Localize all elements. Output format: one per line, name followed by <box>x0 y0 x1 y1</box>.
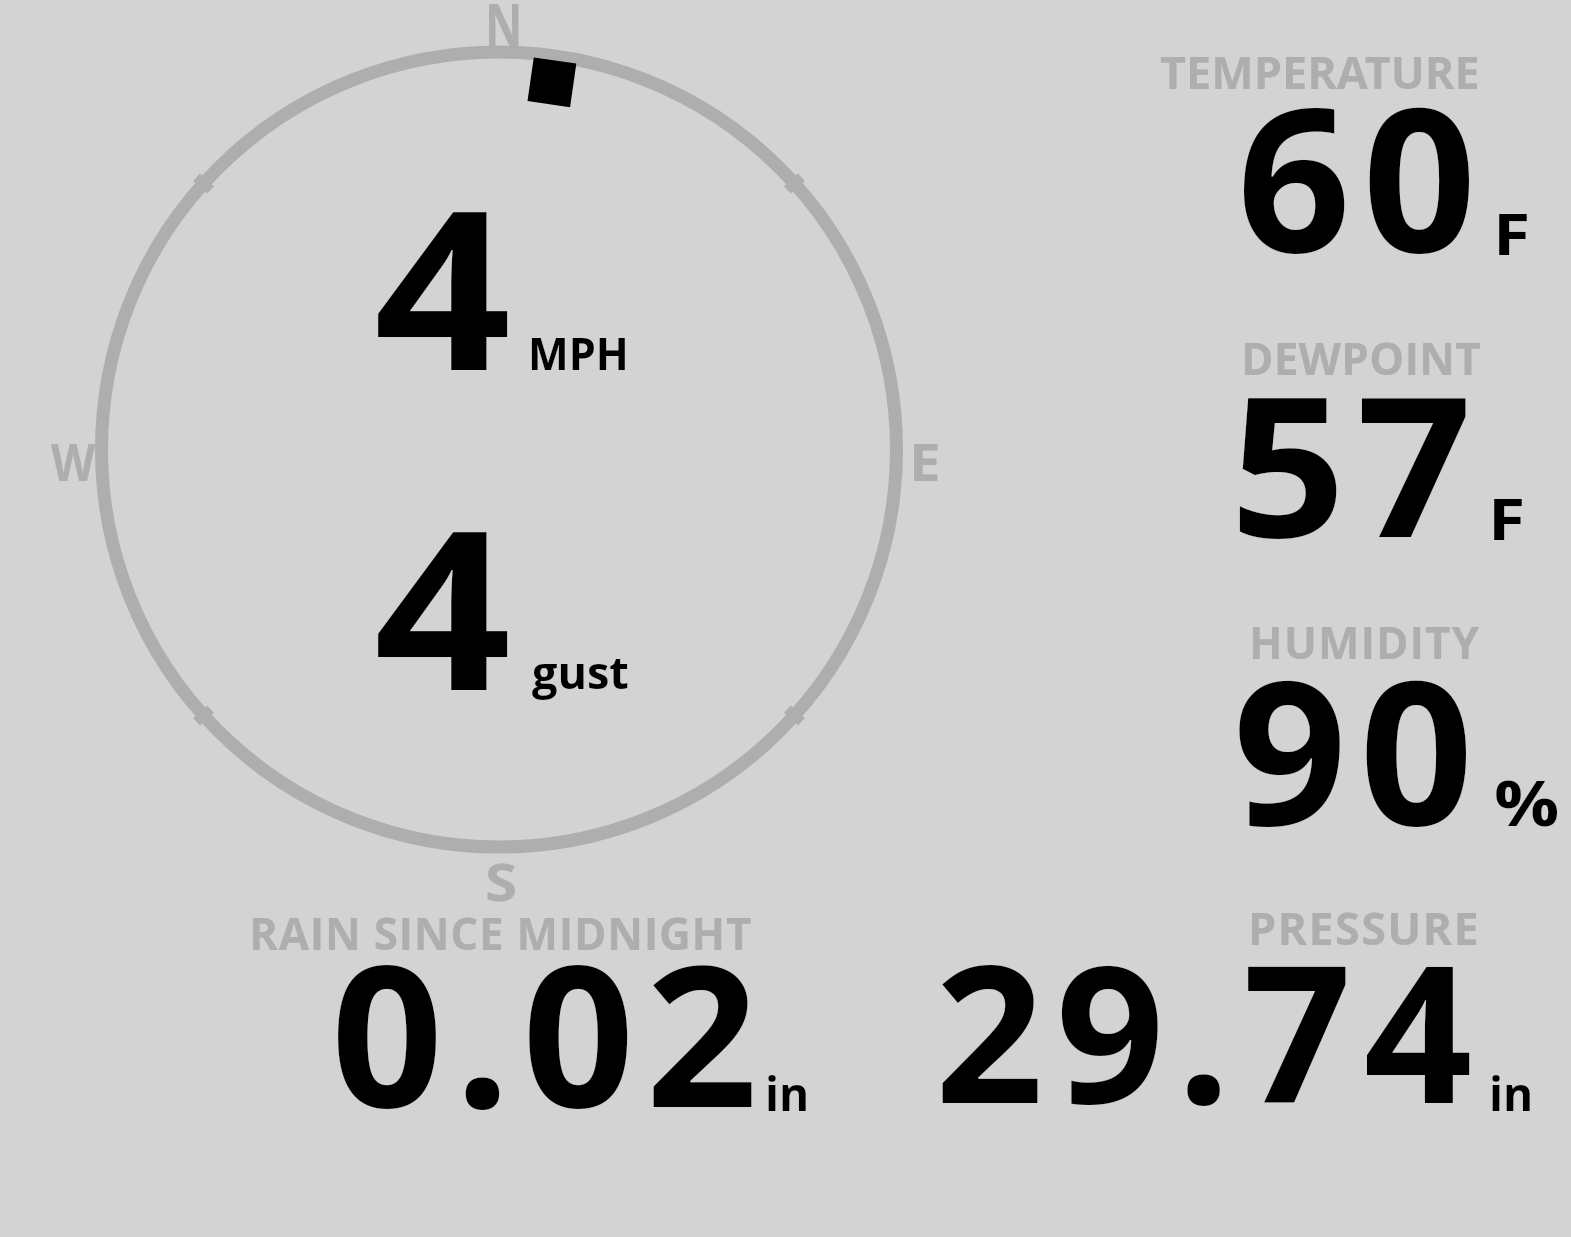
staticText: 29.74 <box>935 900 1485 1159</box>
staticText: E <box>909 425 942 496</box>
staticText: N <box>485 0 522 63</box>
staticText: in <box>765 1062 810 1125</box>
staticText: 90 <box>1233 612 1487 883</box>
staticText: 4 <box>374 454 512 755</box>
staticText: in <box>1489 1062 1534 1125</box>
button[interactable]: Wind 4 miles per hour, gusting 4, from t… <box>46 0 956 880</box>
staticText: F <box>1493 193 1530 272</box>
button[interactable]: Pressure 29.74 inches <box>880 885 1560 1135</box>
staticText: MPH <box>528 322 630 383</box>
button[interactable]: Humidity 90 percent <box>1000 590 1560 860</box>
staticText: 60 <box>1237 39 1489 310</box>
staticText: TEMPERATURE <box>1160 41 1480 102</box>
staticText: % <box>1494 759 1560 845</box>
staticText: HUMIDITY <box>1249 612 1481 672</box>
staticText: DEWPOINT <box>1241 328 1481 388</box>
staticText: S <box>485 845 517 916</box>
button[interactable]: Temperature 60 degrees Fahrenheit <box>1000 20 1560 290</box>
staticText: gust <box>532 641 629 702</box>
staticText: PRESSURE <box>1248 897 1481 958</box>
button[interactable]: Dewpoint 57 degrees Fahrenheit <box>1000 300 1560 580</box>
staticText: 57 <box>1230 330 1483 594</box>
staticText: F <box>1488 478 1525 557</box>
staticText: 4 <box>374 134 512 435</box>
staticText: RAIN SINCE MIDNIGHT <box>249 903 753 963</box>
button[interactable]: Rain since midnight 0.02 inches <box>160 885 860 1135</box>
staticText: W <box>51 425 96 496</box>
staticText: 0.02 <box>331 898 770 1165</box>
